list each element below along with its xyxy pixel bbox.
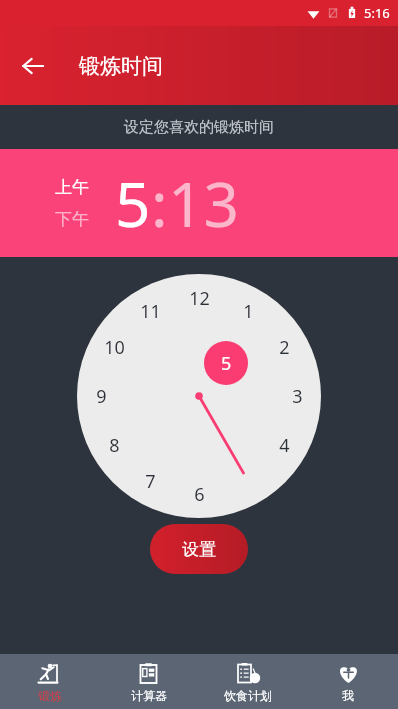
button[interactable]: 10 xyxy=(97,333,131,361)
button[interactable]: 6 xyxy=(182,480,216,508)
button[interactable]: Back xyxy=(10,43,56,89)
button[interactable]: 13 xyxy=(168,161,239,245)
staticText: 4 xyxy=(279,433,290,458)
staticText: 2 xyxy=(279,335,290,360)
staticText: 5 xyxy=(115,161,151,245)
staticText: 12 xyxy=(189,286,210,311)
staticText: 10 xyxy=(104,335,125,360)
button[interactable]: 我 xyxy=(298,654,398,709)
staticText: 5 xyxy=(221,351,232,376)
staticText: 我 xyxy=(342,688,354,703)
staticText: 计算器 xyxy=(131,688,167,703)
staticText: 6 xyxy=(194,482,205,507)
button[interactable]: 2 xyxy=(267,333,301,361)
button[interactable]: 9 xyxy=(84,382,118,410)
button[interactable]: 11 xyxy=(133,297,167,325)
button[interactable]: 计算器 xyxy=(99,654,198,709)
button[interactable]: 设置 xyxy=(150,524,248,574)
staticText: 13 xyxy=(168,161,239,245)
staticText: 下午 xyxy=(55,209,89,230)
button[interactable]: 下午 xyxy=(55,209,89,230)
staticText: 设定您喜欢的锻炼时间 xyxy=(124,118,274,137)
staticText: 锻炼时间 xyxy=(79,53,163,79)
staticText: 上午 xyxy=(55,177,89,198)
button[interactable]: 8 xyxy=(97,431,131,459)
button[interactable]: 5 xyxy=(204,341,248,385)
button[interactable]: 5 xyxy=(115,161,151,245)
staticText: 饮食计划 xyxy=(224,688,272,703)
button[interactable]: 上午 xyxy=(55,177,89,198)
button[interactable]: 7 xyxy=(133,467,167,495)
staticText: 1 xyxy=(243,299,254,324)
staticText: 11 xyxy=(140,299,161,324)
staticText: 7 xyxy=(145,469,156,494)
staticText: 3 xyxy=(292,384,303,409)
staticText: 设置 xyxy=(182,539,216,560)
button[interactable]: 3 xyxy=(280,382,314,410)
staticText: 5:16 xyxy=(364,4,390,22)
button[interactable]: 4 xyxy=(267,431,301,459)
button[interactable]: 12 xyxy=(182,284,216,312)
button[interactable]: 饮食计划 xyxy=(198,654,298,709)
staticText: 8 xyxy=(109,433,120,458)
staticText: 9 xyxy=(96,384,107,409)
staticText: 锻炼 xyxy=(38,688,62,703)
staticText: : xyxy=(151,161,168,245)
button[interactable]: 锻炼 xyxy=(0,654,99,709)
button[interactable]: 1 xyxy=(231,297,265,325)
